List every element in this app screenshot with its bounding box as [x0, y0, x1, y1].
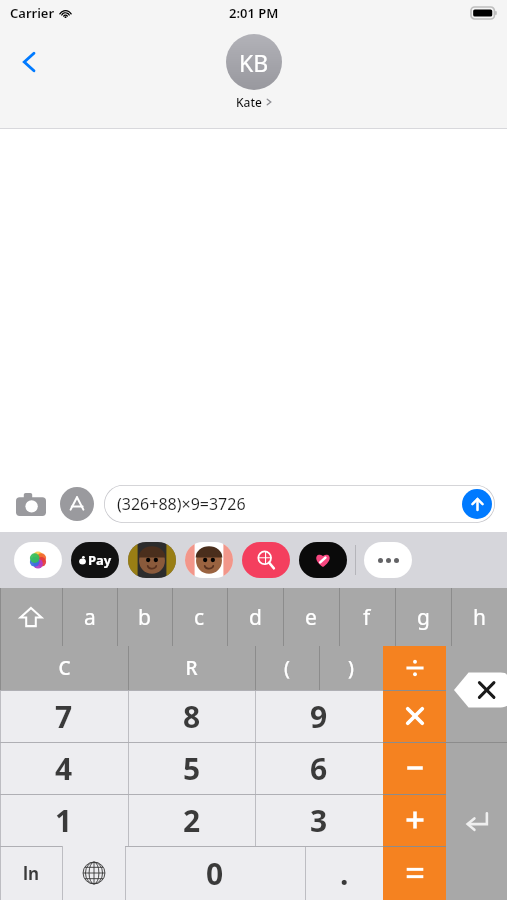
button[interactable]: a	[62, 588, 117, 646]
button[interactable]: (326+88)×9=3726	[104, 485, 495, 523]
button[interactable]: App Store	[60, 487, 94, 521]
button[interactable]: .	[305, 846, 383, 900]
button[interactable]: ×	[383, 690, 446, 742]
button[interactable]: e	[283, 588, 339, 646]
staticText: Pay	[88, 551, 112, 569]
button[interactable]: Memoji	[185, 542, 233, 578]
button[interactable]: f	[339, 588, 395, 646]
button[interactable]: KB	[226, 34, 282, 110]
staticText: (326+88)×9=3726	[117, 493, 246, 515]
button[interactable]: Keyboard language	[62, 846, 125, 900]
button[interactable]: Photos	[14, 542, 62, 578]
staticText: 0	[206, 853, 224, 894]
staticText: 2	[183, 800, 201, 841]
staticText: c	[194, 603, 205, 632]
button[interactable]: 9	[255, 690, 383, 742]
staticText: g	[417, 603, 430, 632]
staticText: Kate	[236, 94, 262, 110]
staticText: 6	[310, 748, 328, 789]
button[interactable]: c	[172, 588, 227, 646]
staticText: )	[348, 655, 354, 681]
staticText: 1	[55, 800, 73, 841]
button[interactable]: 3	[255, 794, 383, 846]
staticText: KB	[239, 47, 269, 78]
button[interactable]: d	[227, 588, 283, 646]
button[interactable]: Memoji	[128, 542, 176, 578]
button[interactable]: =	[383, 846, 446, 900]
staticText: e	[305, 603, 317, 632]
button[interactable]: ÷	[383, 646, 446, 690]
button[interactable]: 5	[128, 742, 255, 794]
staticText: b	[138, 603, 151, 632]
staticText: 4	[55, 748, 73, 789]
button[interactable]: More	[364, 542, 412, 578]
staticText: a	[84, 603, 96, 632]
staticText: .	[340, 853, 349, 894]
button[interactable]: Apple Pay	[71, 542, 119, 578]
button[interactable]: Back	[8, 40, 52, 84]
button[interactable]: )	[319, 646, 383, 690]
staticText: 8	[183, 696, 201, 737]
staticText: 2:01 PM	[229, 4, 279, 22]
staticText: Carrier	[10, 4, 55, 22]
button[interactable]: −	[383, 742, 446, 794]
button[interactable]: Images	[242, 542, 290, 578]
button[interactable]: ln	[0, 846, 62, 900]
button[interactable]: (	[255, 646, 319, 690]
button[interactable]: +	[383, 794, 446, 846]
button[interactable]: g	[395, 588, 451, 646]
staticText: 3	[310, 800, 328, 841]
button[interactable]	[0, 588, 62, 646]
staticText: d	[249, 603, 262, 632]
button[interactable]: 4	[0, 742, 128, 794]
button[interactable]: 8	[128, 690, 255, 742]
button[interactable]: C	[0, 646, 128, 690]
button[interactable]: Send	[462, 489, 492, 519]
button[interactable]: 7	[0, 690, 128, 742]
staticText: 5	[183, 748, 201, 789]
button[interactable]: Return	[446, 742, 507, 900]
button[interactable]: Digital Touch	[299, 542, 347, 578]
staticText: 9	[310, 696, 328, 737]
staticText: ln	[23, 862, 40, 885]
button[interactable]: 2	[128, 794, 255, 846]
button[interactable]: 0	[125, 846, 305, 900]
staticText: R	[185, 655, 198, 681]
button[interactable]: R	[128, 646, 255, 690]
button[interactable]: h	[451, 588, 507, 646]
button[interactable]: 6	[255, 742, 383, 794]
staticText: h	[473, 603, 486, 632]
staticText: 7	[55, 696, 73, 737]
staticText: C	[58, 655, 71, 681]
staticText: f	[363, 603, 371, 632]
button[interactable]: 1	[0, 794, 128, 846]
staticText: (	[284, 655, 290, 681]
button[interactable]: b	[117, 588, 172, 646]
button[interactable]: Camera	[12, 485, 50, 523]
button[interactable]: Delete	[446, 646, 507, 742]
